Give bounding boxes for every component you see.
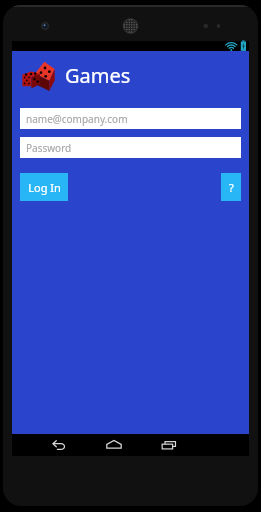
staticText: Password — [26, 141, 72, 155]
staticText: ? — [229, 180, 234, 195]
button[interactable]: Home — [94, 434, 133, 456]
button[interactable]: name@company.com — [20, 108, 241, 129]
staticText: Games — [65, 62, 131, 89]
button[interactable]: Recent apps — [149, 434, 188, 456]
button[interactable]: Back — [39, 434, 78, 456]
staticText: Log In — [28, 180, 61, 195]
staticText: name@company.com — [26, 112, 128, 126]
button[interactable]: Help — [221, 173, 241, 201]
button[interactable]: Log In — [20, 173, 68, 201]
button[interactable]: Password — [20, 137, 241, 158]
